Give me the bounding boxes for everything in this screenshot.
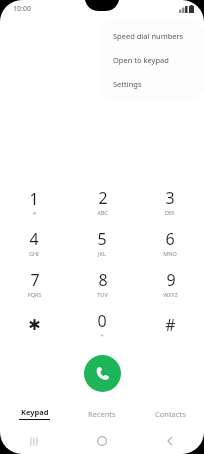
staticText: 1 <box>29 188 39 210</box>
staticText: # <box>165 314 176 336</box>
button[interactable]: 2 <box>68 181 136 222</box>
button[interactable]: ✱ <box>0 304 68 345</box>
button[interactable]: 7 <box>0 263 68 304</box>
staticText: 4 <box>29 228 39 250</box>
staticText: Speed dial numbers <box>113 31 184 41</box>
button[interactable]: 3 <box>136 181 204 222</box>
button[interactable]: Back <box>136 428 204 454</box>
staticText: 2 <box>98 187 108 209</box>
button[interactable]: 0 <box>68 304 136 345</box>
button[interactable]: Keypad <box>0 399 68 428</box>
button[interactable]: Recent apps <box>0 428 68 454</box>
button[interactable]: Open to keypad <box>100 48 204 72</box>
button[interactable]: 4 <box>0 222 68 263</box>
staticText: Settings <box>113 79 142 89</box>
staticText: PQRS <box>27 291 42 298</box>
button[interactable]: Recents <box>68 399 136 428</box>
staticText: 8 <box>98 269 108 291</box>
staticText: ✱ <box>28 316 41 333</box>
staticText: 5 <box>97 228 107 250</box>
staticText: Contacts <box>155 409 186 419</box>
staticText: 7 <box>30 269 40 291</box>
staticText: MNO <box>163 250 177 257</box>
button[interactable]: Settings <box>100 72 204 96</box>
button[interactable]: Contacts <box>136 399 204 428</box>
button[interactable]: Call <box>84 355 121 392</box>
staticText: WXYZ <box>163 291 178 298</box>
button[interactable]: 6 <box>136 222 204 263</box>
staticText: Keypad <box>21 407 49 417</box>
staticText: Open to keypad <box>113 55 169 65</box>
button[interactable]: 1 <box>0 181 68 222</box>
staticText: ABC <box>97 209 108 216</box>
button[interactable]: 8 <box>68 263 136 304</box>
staticText: 9 <box>166 269 176 291</box>
staticText: 10:00 <box>13 4 31 14</box>
staticText: DEF <box>165 209 175 216</box>
button[interactable]: Home <box>68 428 136 454</box>
button[interactable]: Speed dial numbers <box>100 24 204 48</box>
staticText: GHI <box>29 250 39 257</box>
button[interactable]: # <box>136 304 204 345</box>
staticText: 0 <box>97 310 107 332</box>
staticText: JKL <box>98 250 106 257</box>
button[interactable]: 5 <box>68 222 136 263</box>
staticText: + <box>100 332 104 339</box>
staticText: 6 <box>165 228 175 250</box>
staticText: TUV <box>97 291 108 298</box>
staticText: ∞ <box>32 210 37 216</box>
staticText: Recents <box>88 409 116 419</box>
staticText: 3 <box>165 187 175 209</box>
button[interactable]: 9 <box>136 263 204 304</box>
